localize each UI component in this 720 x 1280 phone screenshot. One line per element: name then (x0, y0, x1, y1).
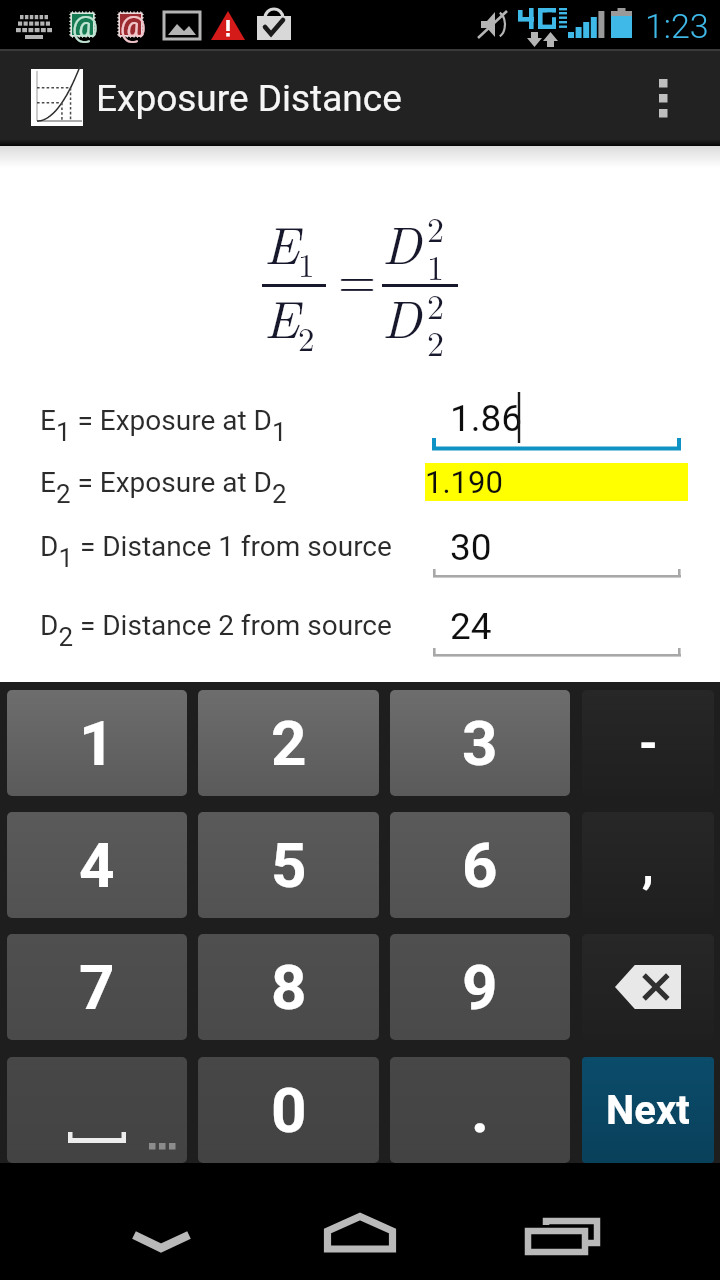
button[interactable]: 2 (198, 690, 379, 796)
staticText: E2 = Exposure at D2 (40, 466, 287, 509)
staticText: , (642, 837, 654, 893)
button[interactable]: Back (101, 1163, 221, 1280)
button[interactable]: 8 (198, 934, 379, 1040)
staticText: E1 = Exposure at D1 (40, 404, 287, 447)
button[interactable]: Home (300, 1163, 420, 1280)
staticText: D (382, 279, 422, 353)
staticText: @ (72, 10, 99, 44)
staticText: D2 = Distance 2 from source (40, 609, 392, 652)
button[interactable]: Backspace (582, 934, 714, 1040)
button[interactable]: Recent apps (500, 1163, 620, 1280)
button[interactable]: 6 (390, 812, 570, 918)
staticText: 1.190 (425, 464, 503, 500)
staticText: 2 (271, 707, 307, 780)
staticText: 2 (427, 281, 444, 329)
button[interactable]: 5 (198, 812, 379, 918)
staticText: 9 (462, 951, 498, 1024)
staticText: 2 (427, 318, 444, 366)
button[interactable]: . (390, 1057, 570, 1163)
staticText: D (382, 205, 422, 279)
staticText: 1 (79, 707, 115, 780)
staticText: E (264, 205, 300, 279)
staticText: 1 (427, 242, 444, 290)
staticText: 24 (450, 605, 492, 648)
staticText: 5 (271, 829, 307, 902)
button[interactable]: Next (582, 1057, 714, 1163)
staticText: . (471, 1074, 490, 1147)
staticText: 8 (271, 951, 307, 1024)
button[interactable]: 0 (198, 1057, 379, 1163)
button[interactable]: More options (630, 50, 720, 146)
staticText: 0 (271, 1074, 307, 1147)
staticText: 7 (79, 951, 115, 1024)
button[interactable]: Space (7, 1057, 187, 1163)
staticText: E (264, 279, 300, 353)
staticText: 30 (450, 526, 492, 569)
button[interactable]: 4 (7, 812, 187, 918)
staticText: 1:23 (645, 6, 709, 46)
button[interactable]: 3 (390, 690, 570, 796)
staticText: 1.86 (450, 397, 523, 440)
staticText: Exposure Distance (96, 77, 402, 120)
staticText: 3 (462, 707, 498, 780)
staticText: Next (606, 1087, 690, 1134)
button[interactable]: , (582, 812, 714, 918)
button[interactable]: 1 (7, 690, 187, 796)
staticText: 4 (79, 829, 115, 902)
staticText: - (639, 715, 658, 771)
staticText: @ (120, 10, 147, 44)
button[interactable]: - (582, 690, 714, 796)
staticText: 6 (462, 829, 498, 902)
staticText: 1 (298, 240, 315, 287)
button[interactable]: 7 (7, 934, 187, 1040)
staticText: = (338, 242, 377, 311)
button[interactable]: 9 (390, 934, 570, 1040)
staticText: D1 = Distance 1 from source (40, 530, 392, 573)
staticText: 2 (298, 314, 315, 361)
staticText: 2 (427, 204, 444, 252)
